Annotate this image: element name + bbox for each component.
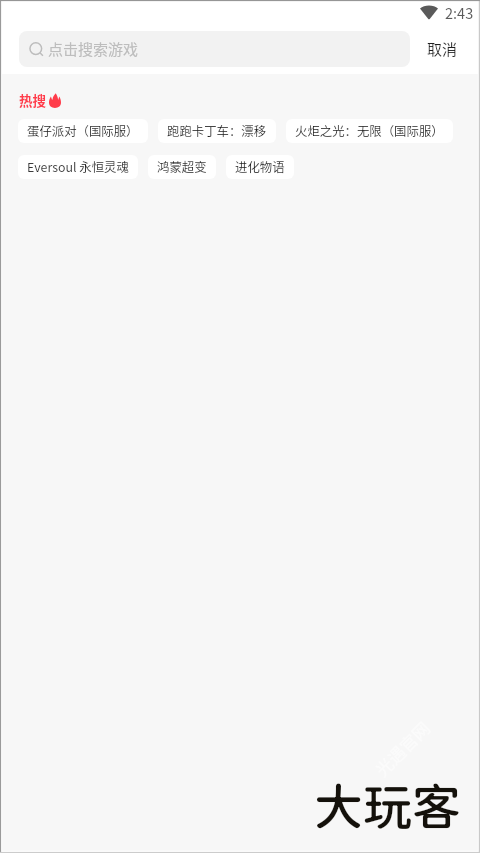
staticText: 鸿蒙超变: [157, 158, 207, 176]
button[interactable]: 火炬之光：无限（国际服）: [286, 119, 453, 143]
staticText: 火炬之光：无限（国际服）: [295, 122, 444, 140]
staticText: 蛋仔派对（国际服）: [27, 122, 139, 140]
staticText: 点击搜索游戏: [48, 38, 139, 60]
button[interactable]: Eversoul 永恒灵魂: [18, 155, 138, 179]
staticText: 进化物语: [235, 158, 285, 176]
button[interactable]: 跑跑卡丁车：漂移: [158, 119, 276, 143]
button[interactable]: 鸿蒙超变: [148, 155, 216, 179]
button[interactable]: 进化物语: [226, 155, 294, 179]
staticText: 取消: [427, 38, 458, 60]
staticText: 大玩客: [314, 777, 462, 835]
button[interactable]: 取消: [410, 31, 475, 67]
staticText: 2:43: [445, 2, 474, 23]
button[interactable]: 点击搜索游戏: [19, 31, 410, 67]
staticText: 跑跑卡丁车：漂移: [167, 122, 267, 140]
staticText: Eversoul 永恒灵魂: [27, 158, 129, 176]
button[interactable]: 蛋仔派对（国际服）: [18, 119, 148, 143]
staticText: 热搜: [19, 90, 46, 110]
